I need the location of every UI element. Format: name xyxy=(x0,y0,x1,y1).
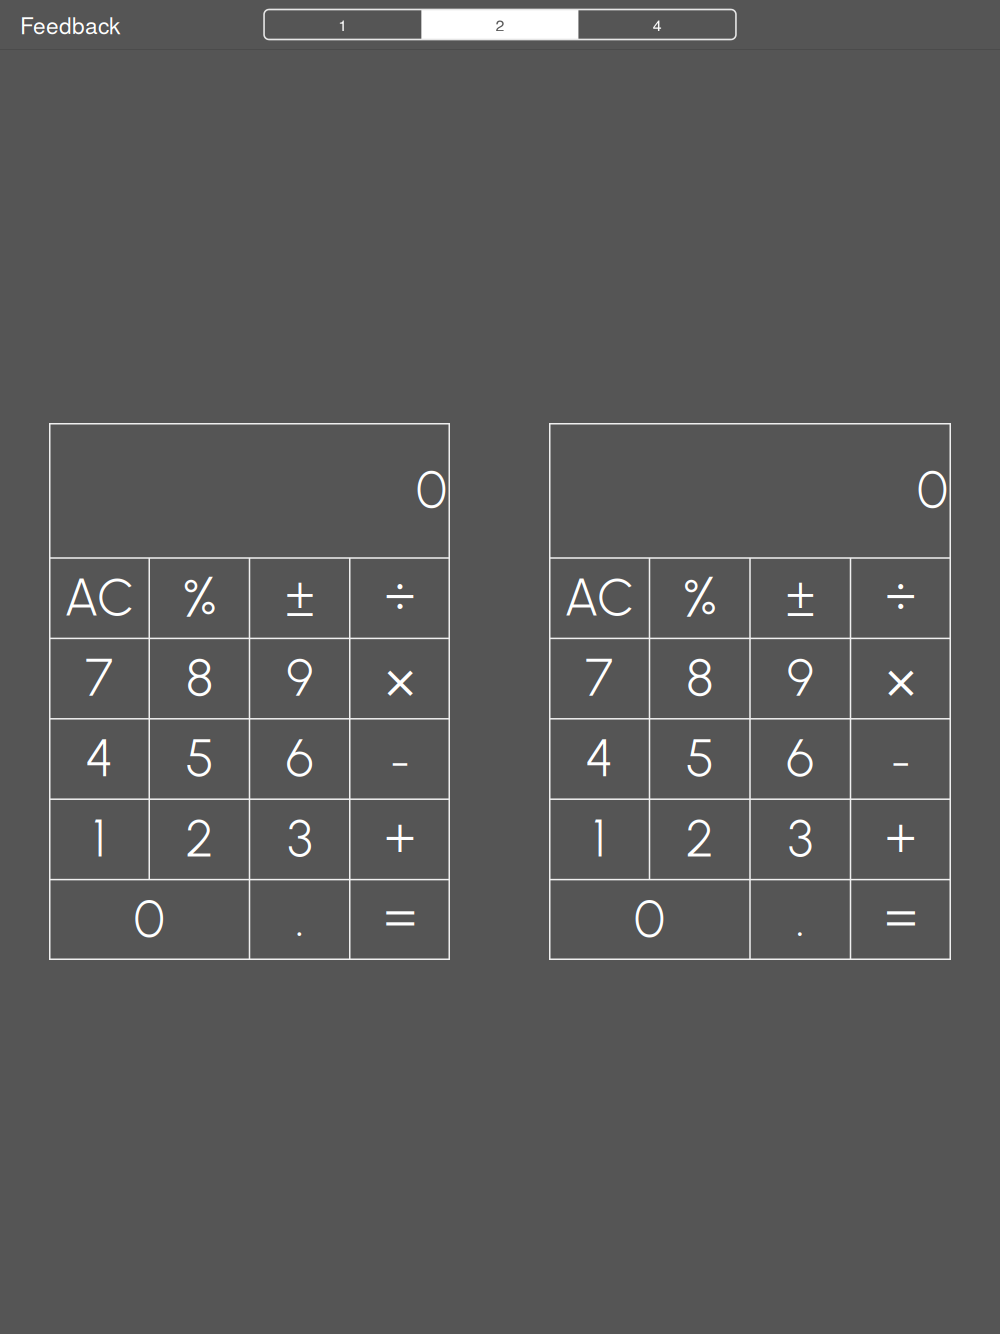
button[interactable]: 4 xyxy=(49,719,149,799)
button[interactable]: - xyxy=(850,719,951,799)
button[interactable]: 4 xyxy=(549,719,649,799)
button[interactable]: 6 xyxy=(249,719,350,799)
button[interactable]: 5 xyxy=(649,719,750,799)
button[interactable]: 8 xyxy=(149,638,249,719)
staticText: 5 xyxy=(686,727,714,789)
staticText: ± xyxy=(285,568,314,629)
staticText: ± xyxy=(786,568,815,629)
staticText: 8 xyxy=(186,646,213,709)
staticText: . xyxy=(796,883,805,949)
button[interactable]: 6 xyxy=(750,719,850,799)
staticText: % xyxy=(182,564,216,631)
staticText: AC xyxy=(64,566,134,628)
staticText: 4 xyxy=(85,727,113,789)
button[interactable]: + xyxy=(850,799,951,880)
staticText: 7 xyxy=(85,646,113,709)
staticText: 9 xyxy=(286,646,313,709)
staticText: 3 xyxy=(788,807,813,870)
button[interactable]: 2 xyxy=(149,799,249,880)
staticText: = xyxy=(885,882,917,950)
staticText: 2 xyxy=(495,13,504,36)
button[interactable]: 4 xyxy=(579,9,736,39)
staticText: . xyxy=(295,883,304,949)
staticText: 7 xyxy=(585,646,613,709)
button[interactable]: × xyxy=(850,638,951,719)
button[interactable]: ÷ xyxy=(350,558,450,638)
staticText: + xyxy=(384,804,415,868)
staticText: 0 xyxy=(917,458,948,521)
button[interactable]: % xyxy=(149,558,249,638)
button[interactable]: 8 xyxy=(649,638,750,719)
button[interactable]: . xyxy=(249,880,350,960)
staticText: ÷ xyxy=(384,562,415,626)
staticText: × xyxy=(385,642,415,718)
button[interactable]: 0 xyxy=(49,880,249,960)
staticText: - xyxy=(390,735,410,789)
button[interactable]: . xyxy=(750,880,850,960)
staticText: ÷ xyxy=(885,562,916,626)
staticText: 2 xyxy=(185,807,213,870)
staticText: = xyxy=(384,882,416,950)
button[interactable]: 3 xyxy=(249,799,350,880)
staticText: 0 xyxy=(134,888,165,950)
staticText: 2 xyxy=(686,807,714,870)
button[interactable]: 1 xyxy=(549,799,649,880)
staticText: 3 xyxy=(287,807,312,870)
button[interactable]: ± xyxy=(249,558,350,638)
button[interactable]: % xyxy=(649,558,750,638)
button[interactable]: 5 xyxy=(149,719,249,799)
button[interactable]: 9 xyxy=(750,638,850,719)
button[interactable]: ± xyxy=(750,558,850,638)
button[interactable]: ÷ xyxy=(850,558,951,638)
button[interactable]: 1 xyxy=(49,799,149,880)
button[interactable]: 2 xyxy=(421,9,579,39)
staticText: 8 xyxy=(686,646,713,709)
button[interactable]: AC xyxy=(549,558,649,638)
staticText: + xyxy=(885,804,916,868)
button[interactable]: 7 xyxy=(49,638,149,719)
staticText: 9 xyxy=(787,646,814,709)
staticText: 6 xyxy=(786,727,814,789)
staticText: 6 xyxy=(286,727,314,789)
button[interactable]: = xyxy=(350,880,450,960)
staticText: - xyxy=(891,735,911,789)
staticText: 0 xyxy=(416,458,447,521)
button[interactable]: + xyxy=(350,799,450,880)
staticText: 1 xyxy=(93,807,106,870)
staticText: 0 xyxy=(634,888,665,950)
staticText: 4 xyxy=(585,727,613,789)
button[interactable]: 7 xyxy=(549,638,649,719)
button[interactable]: × xyxy=(350,638,450,719)
staticText: 1 xyxy=(593,807,606,870)
staticText: 1 xyxy=(338,13,347,36)
staticText: AC xyxy=(564,566,634,628)
button[interactable]: = xyxy=(850,880,951,960)
staticText: % xyxy=(683,564,717,631)
button[interactable]: 1 xyxy=(264,9,421,39)
button[interactable]: 9 xyxy=(249,638,350,719)
staticText: × xyxy=(886,642,916,718)
button[interactable]: - xyxy=(350,719,450,799)
button[interactable]: 2 xyxy=(649,799,750,880)
button[interactable]: 0 xyxy=(549,880,750,960)
button[interactable]: 3 xyxy=(750,799,850,880)
staticText: 5 xyxy=(185,727,213,789)
staticText: 4 xyxy=(653,13,662,36)
button[interactable]: AC xyxy=(49,558,149,638)
staticText: Feedback xyxy=(20,8,120,41)
